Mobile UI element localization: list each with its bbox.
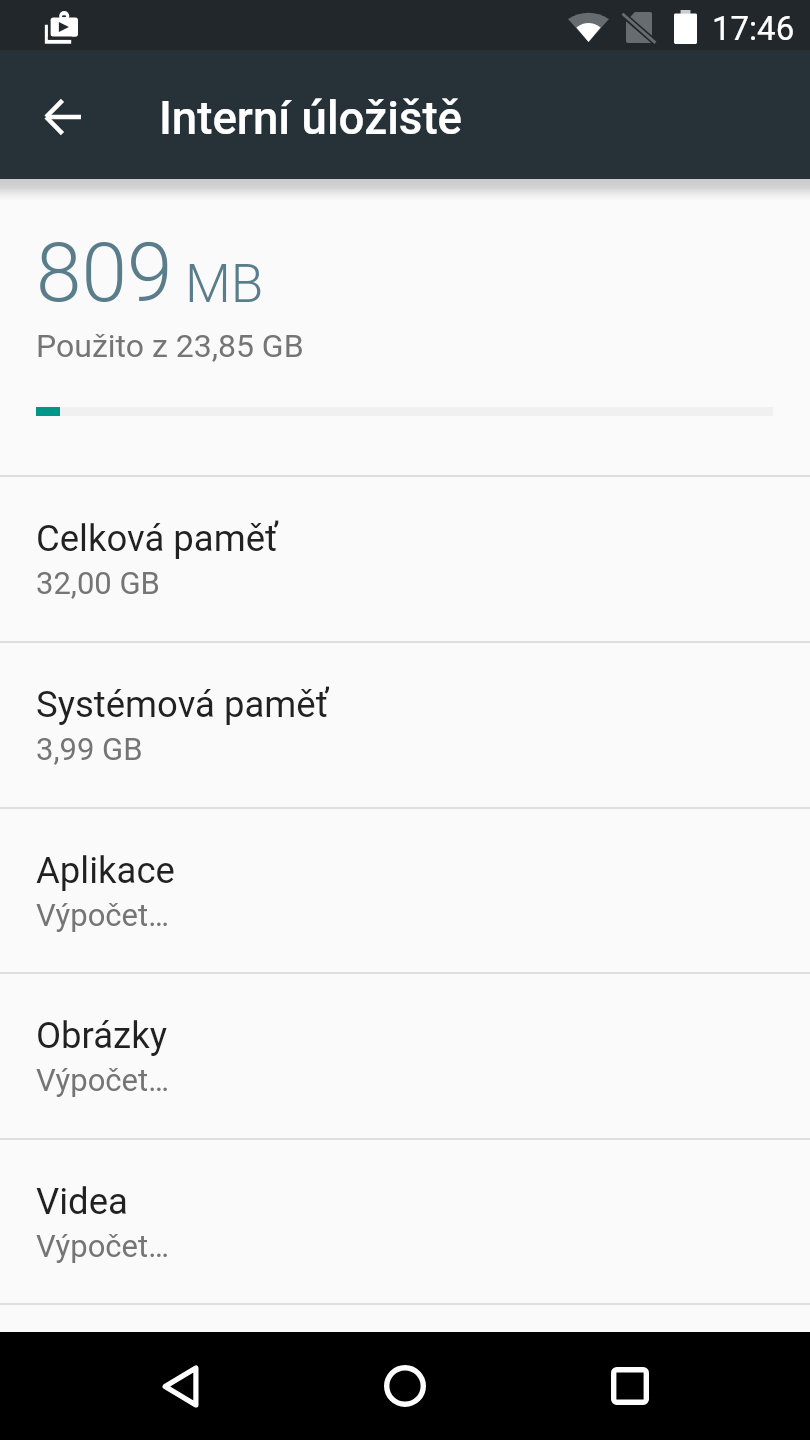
button[interactable]: Systémová paměť [0, 643, 810, 807]
staticText: Použito z 23,85 GB [36, 327, 304, 365]
staticText: Výpočet… [36, 1228, 169, 1264]
staticText: Interní úložiště [159, 92, 463, 145]
staticText: Obrázky [36, 1014, 167, 1057]
staticText: Výpočet… [36, 897, 169, 933]
staticText: 17:46 [712, 9, 795, 48]
button[interactable]: Aplikace [0, 809, 810, 972]
button[interactable]: Recent apps [576, 1332, 684, 1440]
staticText: MB [185, 253, 264, 315]
button[interactable]: Home [351, 1332, 459, 1440]
staticText: Aplikace [36, 849, 175, 892]
staticText: Systémová paměť [36, 683, 329, 726]
staticText: Celková paměť [36, 517, 278, 560]
button[interactable]: Videa [0, 1140, 810, 1303]
staticText: 32,00 GB [36, 565, 160, 601]
button[interactable]: Back [126, 1332, 234, 1440]
staticText: 809 [36, 225, 173, 321]
button[interactable]: Obrázky [0, 974, 810, 1138]
staticText: Výpočet… [36, 1062, 169, 1098]
button[interactable]: Celková paměť [0, 477, 810, 641]
staticText: Videa [36, 1180, 128, 1223]
staticText: 3,99 GB [36, 731, 143, 767]
button[interactable]: Back [20, 75, 104, 159]
